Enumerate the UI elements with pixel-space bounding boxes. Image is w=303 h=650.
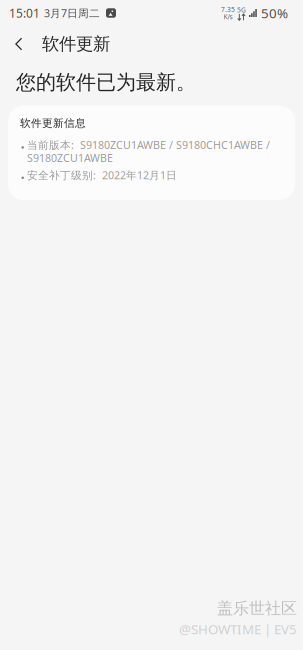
staticText: 50% <box>261 4 288 22</box>
staticText: 15:01 <box>9 5 40 21</box>
staticText: 3月7日周二 <box>44 6 100 20</box>
staticText: @SHOWTIME | EV5 <box>179 620 297 638</box>
staticText: 当前版本: S9180ZCU1AWBE / S9180CHC1AWBE / S9… <box>27 138 270 165</box>
staticText: 软件更新 <box>42 33 110 55</box>
staticText: 盖乐世社区 <box>217 599 297 618</box>
staticText: 您的软件已为最新。 <box>16 70 196 95</box>
staticText: 5G <box>237 6 246 14</box>
staticText: 安全补丁级别: 2022年12月1日 <box>27 168 177 182</box>
button[interactable]: Back <box>4 29 34 59</box>
staticText: 7.35 <box>221 5 235 14</box>
staticText: K/s <box>223 12 232 21</box>
staticText: 软件更新信息 <box>20 117 86 130</box>
